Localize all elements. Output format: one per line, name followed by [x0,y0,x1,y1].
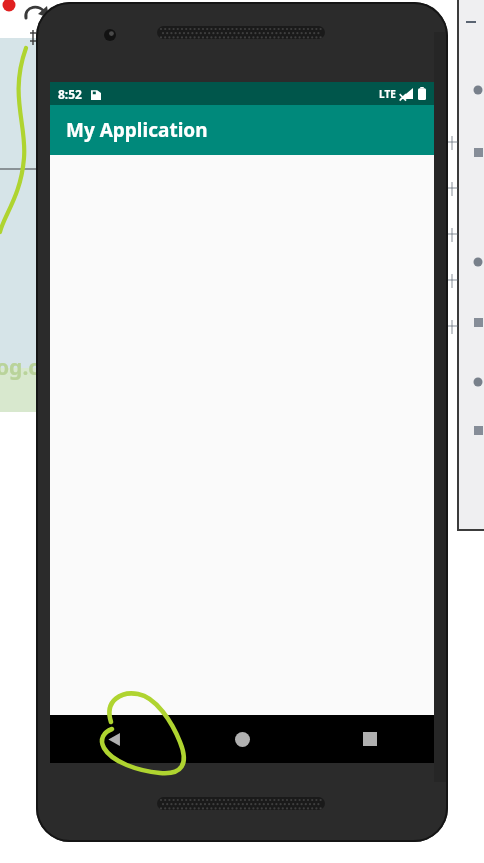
staticText: og.c [0,353,40,382]
button[interactable]: Recent apps [306,715,434,763]
button[interactable]: Home [178,715,306,763]
staticText: LTE [379,87,396,101]
button[interactable]: Back [50,715,178,763]
staticText: 8:52 [58,86,82,102]
staticText: My Application [66,117,208,143]
